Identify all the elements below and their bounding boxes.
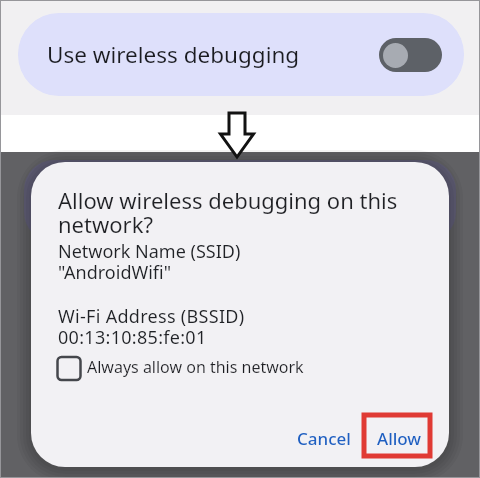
- button[interactable]: Always allow on this network: [56, 354, 304, 380]
- staticText: Always allow on this network: [87, 356, 304, 378]
- staticText: Allow wireless debugging on this network…: [58, 185, 398, 239]
- button[interactable]: [379, 38, 442, 72]
- staticText: Network Name (SSID) "AndroidWifi": [58, 239, 241, 284]
- button[interactable]: Cancel: [297, 427, 351, 450]
- staticText: Use wireless debugging: [47, 39, 300, 70]
- button[interactable]: Use wireless debugging: [18, 13, 464, 96]
- staticText: Wi-Fi Address (BSSID) 00:13:10:85:fe:01: [58, 304, 245, 349]
- button[interactable]: Allow: [377, 427, 422, 450]
